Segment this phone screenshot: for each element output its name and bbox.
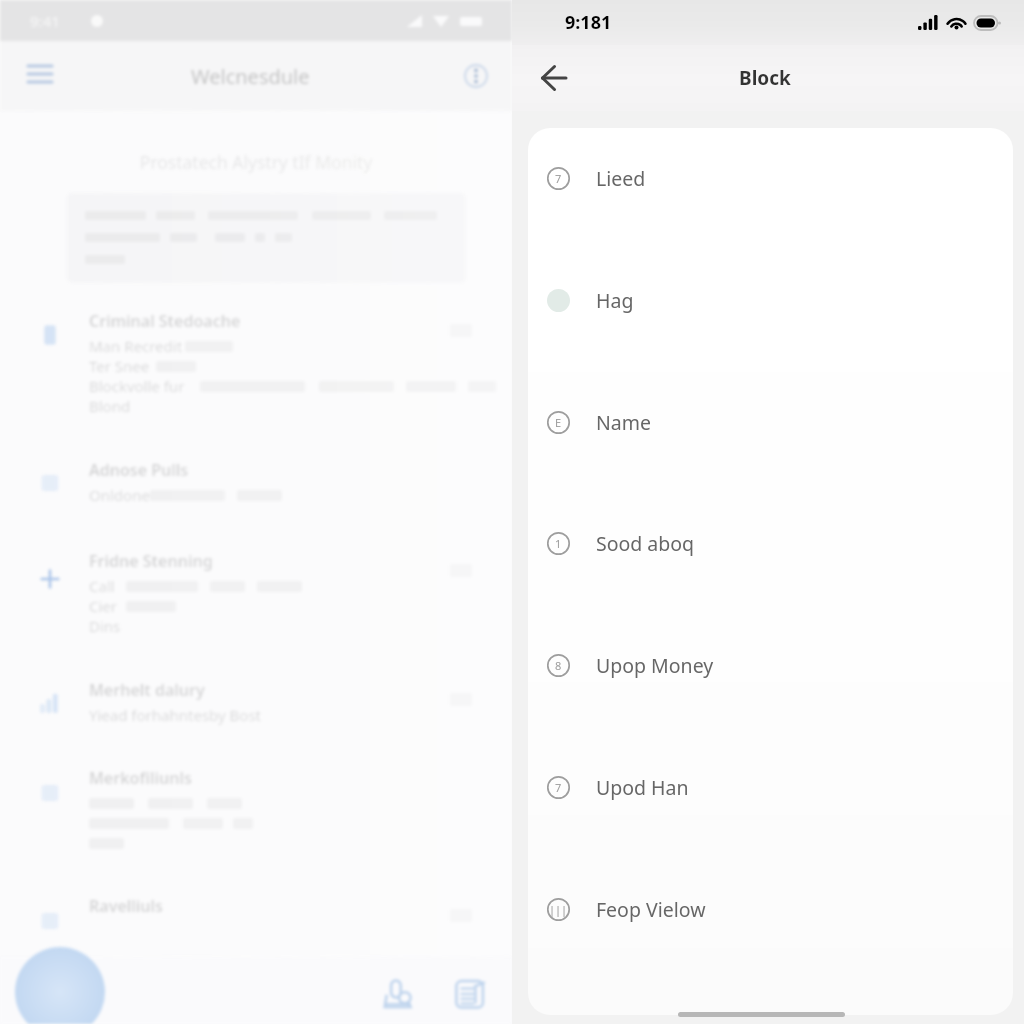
button[interactable]: Back: [531, 55, 577, 101]
staticText: Onldone: [89, 485, 150, 505]
button[interactable]: 7: [528, 743, 1013, 831]
staticText: Call: [89, 576, 115, 596]
button[interactable]: |||: [528, 865, 1013, 953]
staticText: Block: [739, 65, 791, 91]
button[interactable]: Hag: [528, 256, 1013, 344]
staticText: Sood aboq: [596, 530, 695, 557]
staticText: Blockvolle fur: [89, 376, 185, 396]
staticText: Criminal Stedoache: [89, 310, 241, 332]
staticText: Merkofiliunls: [89, 767, 192, 789]
staticText: Blond: [89, 396, 131, 416]
staticText: 9:181: [565, 10, 612, 35]
staticText: Upop Money: [596, 652, 714, 679]
staticText: Name: [596, 409, 651, 436]
staticText: |||: [549, 902, 568, 917]
button[interactable]: E: [528, 378, 1013, 466]
staticText: Lieed: [596, 165, 646, 192]
staticText: Ravelliuls: [89, 895, 163, 917]
button[interactable]: Print: [375, 970, 423, 1018]
button[interactable]: 7: [528, 134, 1013, 222]
staticText: Fridne Stenning: [89, 550, 213, 572]
staticText: E: [555, 415, 562, 430]
button[interactable]: More options: [457, 57, 495, 95]
button[interactable]: Add: [15, 947, 105, 1024]
staticText: 1: [555, 536, 562, 551]
staticText: Upod Han: [596, 774, 689, 801]
staticText: Dins: [89, 616, 121, 636]
staticText: Man Recredit: [89, 336, 183, 356]
button[interactable]: 1: [528, 499, 1013, 587]
button[interactable]: Menu: [17, 53, 63, 99]
staticText: Merhelt dalury: [89, 679, 205, 701]
staticText: Feop Vielow: [596, 896, 706, 923]
staticText: Adnose Pulls: [89, 459, 189, 481]
staticText: Ter Snee: [89, 356, 150, 376]
staticText: 7: [555, 780, 562, 795]
staticText: Welcnesdule: [191, 63, 310, 90]
staticText: Hag: [596, 287, 634, 314]
staticText: Yiead forhahntesby Bost: [89, 705, 261, 725]
staticText: 8: [555, 658, 562, 673]
staticText: 7: [555, 171, 562, 186]
button[interactable]: Invoice: [446, 970, 494, 1018]
button[interactable]: 8: [528, 621, 1013, 709]
staticText: Cier: [89, 596, 118, 616]
